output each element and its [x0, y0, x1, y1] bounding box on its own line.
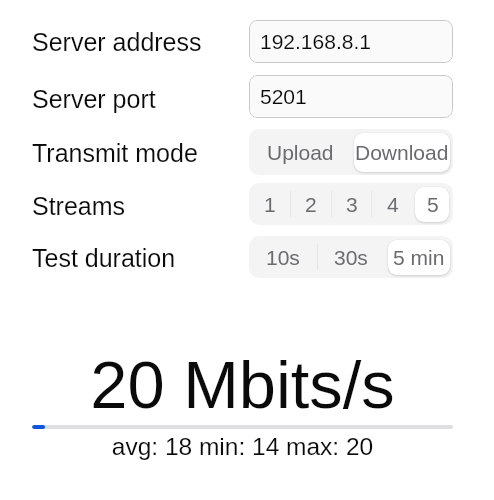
- button[interactable]: 30s: [317, 236, 385, 278]
- staticText: 2: [305, 193, 317, 216]
- staticText: Streams: [32, 192, 126, 220]
- button[interactable]: 4: [372, 183, 413, 225]
- button[interactable]: 1: [249, 183, 290, 225]
- staticText: 3: [346, 193, 358, 216]
- staticText: Test duration: [32, 244, 176, 272]
- button[interactable]: 5: [413, 183, 453, 225]
- staticText: Transmit mode: [32, 139, 198, 167]
- staticText: 5201: [260, 85, 307, 108]
- staticText: 4: [387, 193, 399, 216]
- staticText: 10s: [266, 246, 300, 269]
- staticText: 20 Mbits/s: [32, 348, 453, 423]
- button[interactable]: 10s: [249, 236, 317, 278]
- staticText: 5: [427, 193, 439, 216]
- button[interactable]: 3: [331, 183, 372, 225]
- staticText: Download: [355, 141, 449, 164]
- button[interactable]: Server port input: [249, 75, 453, 118]
- staticText: Upload: [267, 141, 334, 164]
- staticText: Server port: [32, 85, 156, 113]
- staticText: 30s: [334, 246, 368, 269]
- staticText: Server address: [32, 28, 202, 56]
- button[interactable]: 2: [290, 183, 331, 225]
- button[interactable]: 5 min: [385, 236, 453, 278]
- staticText: 1: [264, 193, 276, 216]
- button[interactable]: Upload: [249, 129, 351, 175]
- button[interactable]: Download: [351, 129, 453, 175]
- staticText: avg: 18 min: 14 max: 20: [32, 433, 453, 460]
- staticText: 192.168.8.1: [260, 30, 371, 53]
- button[interactable]: Server address input: [249, 20, 453, 63]
- staticText: 5 min: [393, 246, 445, 269]
